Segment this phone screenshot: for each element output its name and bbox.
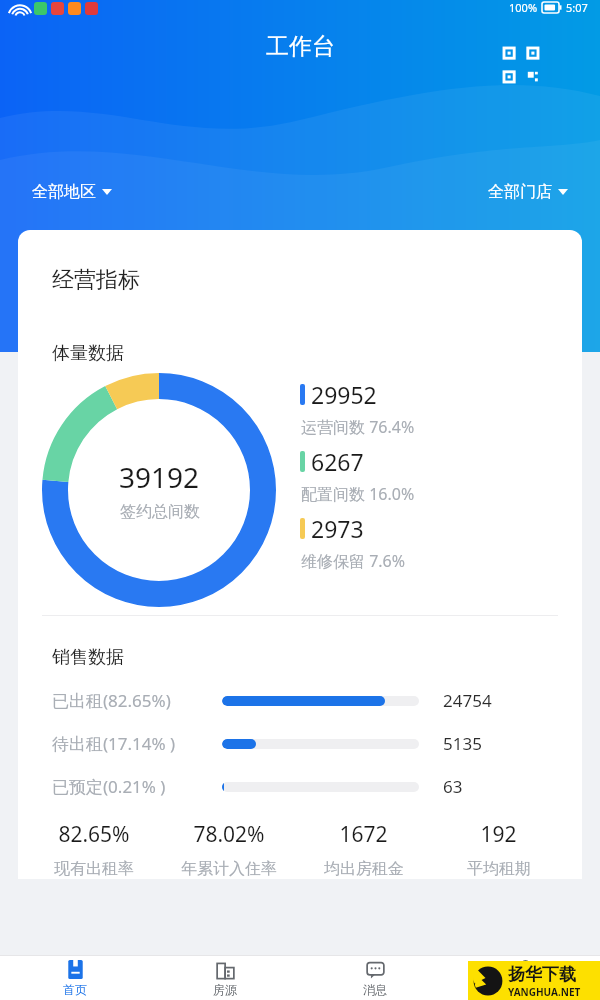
button[interactable]: 已出租(82.65%)	[18, 679, 582, 722]
staticText: 房源	[213, 982, 237, 997]
staticText: 平均租期	[467, 859, 531, 879]
staticText: 100%	[509, 0, 538, 15]
staticText: 现有出租率	[54, 859, 134, 879]
button[interactable]: 82.65%	[26, 820, 161, 879]
staticText: 全部地区	[32, 182, 96, 202]
button[interactable]: 1672	[296, 820, 431, 879]
staticText: 192	[480, 820, 517, 849]
button[interactable]: 78.02%	[161, 820, 296, 879]
staticText: 年累计入住率	[181, 859, 277, 879]
button[interactable]: 待出租(17.14% )	[18, 722, 582, 765]
staticText: 1672	[339, 820, 388, 849]
button[interactable]: 我的	[450, 960, 600, 997]
staticText: 78.02%	[193, 820, 265, 849]
staticText: 63	[443, 775, 463, 798]
button[interactable]: Scan QR code	[498, 42, 544, 88]
staticText: 已出租(82.65%)	[52, 689, 222, 712]
staticText: 经营指标	[52, 266, 140, 294]
staticText: 体量数据	[52, 342, 124, 365]
button[interactable]: 首页	[0, 960, 150, 997]
staticText: 已预定(0.21% )	[52, 775, 222, 798]
staticText: 6267	[311, 446, 364, 477]
staticText: 我的	[513, 982, 537, 997]
button[interactable]: 已预定(0.21% )	[18, 765, 582, 808]
staticText: 39192	[119, 458, 200, 496]
staticText: 销售数据	[52, 646, 124, 669]
staticText: 配置间数 16.0%	[301, 483, 415, 505]
staticText: 5135	[443, 732, 482, 755]
staticText: 24754	[443, 689, 492, 712]
staticText: 2973	[311, 513, 364, 544]
staticText: 工作台	[266, 32, 335, 61]
staticText: 均出房租金	[324, 859, 404, 879]
staticText: 82.65%	[58, 820, 130, 849]
staticText: 5:07	[566, 0, 588, 15]
staticText: 待出租(17.14% )	[52, 732, 222, 755]
button[interactable]: 消息	[300, 960, 450, 997]
staticText: 全部门店	[488, 182, 552, 202]
button[interactable]: 192	[431, 820, 566, 879]
staticText: 运营间数 76.4%	[301, 416, 415, 438]
button[interactable]: 全部门店	[480, 178, 576, 206]
button[interactable]: 全部地区	[24, 178, 120, 206]
staticText: 维修保留 7.6%	[301, 550, 406, 572]
staticText: 扬华下载	[508, 964, 576, 985]
staticText: YANGHUA.NET	[508, 985, 581, 999]
staticText: 首页	[63, 982, 87, 997]
button[interactable]: 房源	[150, 960, 300, 997]
staticText: 消息	[363, 982, 387, 997]
staticText: 签约总间数	[120, 502, 200, 522]
staticText: 29952	[311, 379, 377, 410]
